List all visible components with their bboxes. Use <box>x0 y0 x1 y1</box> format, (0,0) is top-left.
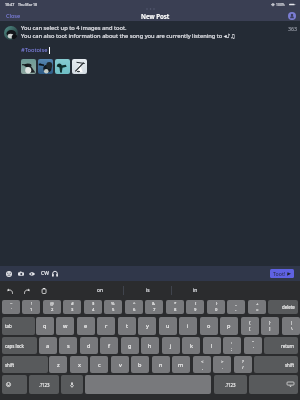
staticText: # <box>71 301 74 307</box>
button[interactable]: o <box>200 317 218 335</box>
button[interactable]: > <box>213 356 231 373</box>
staticText: , <box>202 365 204 371</box>
button[interactable]: t <box>118 317 136 335</box>
button[interactable]: $ <box>84 300 102 314</box>
button[interactable]: .?123 <box>214 375 247 394</box>
button[interactable]: k <box>182 337 200 354</box>
staticText: x <box>78 361 81 369</box>
staticText: / <box>242 365 244 371</box>
button[interactable]: e <box>77 317 95 335</box>
staticText: ( <box>195 301 197 307</box>
button[interactable]: b <box>131 356 149 373</box>
button[interactable]: < <box>193 356 211 373</box>
staticText: b <box>138 361 142 369</box>
button[interactable]: # <box>63 300 81 314</box>
button[interactable]: i <box>179 317 197 335</box>
button[interactable]: .?123 <box>29 375 59 394</box>
staticText: s <box>67 342 70 350</box>
button[interactable]: h <box>141 337 159 354</box>
button[interactable]: g <box>121 337 139 354</box>
button[interactable]: : <box>223 337 241 354</box>
button[interactable]: y <box>138 317 156 335</box>
button[interactable]: & <box>145 300 163 314</box>
button[interactable]: shift <box>2 356 48 373</box>
button[interactable]: ( <box>186 300 204 314</box>
staticText: l <box>211 342 213 350</box>
staticText: * <box>174 301 177 307</box>
button[interactable]: Undo <box>5 286 15 296</box>
button[interactable]: ? <box>234 356 252 373</box>
button[interactable]: s <box>59 337 77 354</box>
button[interactable]: d <box>80 337 98 354</box>
staticText: w <box>63 322 68 330</box>
button[interactable]: n <box>152 356 170 373</box>
button[interactable]: Close <box>4 10 23 21</box>
button[interactable]: } <box>261 317 279 335</box>
staticText: [ <box>249 326 251 332</box>
button[interactable]: tab <box>2 317 35 335</box>
button[interactable]: ! <box>22 300 40 314</box>
button[interactable]: p <box>220 317 238 335</box>
button[interactable]: delete <box>268 300 298 314</box>
button[interactable]: return <box>264 337 298 354</box>
button[interactable]: j <box>162 337 180 354</box>
button[interactable]: Dictate <box>61 375 83 394</box>
button[interactable]: Account <box>288 12 296 20</box>
button[interactable]: r <box>97 317 115 335</box>
staticText: < <box>201 359 204 365</box>
button[interactable]: Toot! <box>270 269 294 278</box>
button[interactable]: Content warning <box>40 266 49 281</box>
button[interactable]: ) <box>207 300 225 314</box>
button[interactable]: " <box>244 337 262 354</box>
button[interactable]: * <box>166 300 184 314</box>
staticText: @ <box>50 301 54 307</box>
button[interactable]: Attached image <box>38 59 53 74</box>
button[interactable]: Visibility <box>27 266 37 281</box>
button[interactable]: Redo <box>22 286 32 296</box>
staticText: } <box>269 320 271 326</box>
staticText: j <box>170 342 172 350</box>
staticText: 1 <box>30 307 33 313</box>
button[interactable]: + <box>248 300 266 314</box>
button[interactable]: is <box>124 281 171 300</box>
button[interactable]: l <box>203 337 221 354</box>
button[interactable]: shift <box>254 356 298 373</box>
button[interactable]: { <box>241 317 259 335</box>
button[interactable]: v <box>111 356 129 373</box>
staticText: o <box>207 322 211 330</box>
button[interactable]: m <box>172 356 190 373</box>
button[interactable]: caps lock <box>2 337 37 354</box>
staticText: & <box>152 301 156 307</box>
button[interactable]: f <box>100 337 118 354</box>
staticText: shift <box>285 362 295 368</box>
button[interactable]: Add media <box>16 266 26 281</box>
button[interactable]: | <box>282 317 300 335</box>
button[interactable]: x <box>70 356 88 373</box>
button[interactable]: Attached image <box>21 59 36 74</box>
staticText: a <box>46 342 50 350</box>
button[interactable]: Hide keyboard <box>249 375 298 394</box>
button[interactable]: Attached image <box>55 59 70 74</box>
button[interactable]: w <box>56 317 74 335</box>
button[interactable]: Emoji keyboard <box>2 375 27 394</box>
button[interactable]: % <box>104 300 122 314</box>
staticText: 5 <box>112 307 115 313</box>
button[interactable]: ^ <box>125 300 143 314</box>
button[interactable]: Emoji <box>4 266 14 281</box>
button[interactable]: c <box>90 356 108 373</box>
staticText: 2 <box>51 307 54 313</box>
button[interactable]: z <box>49 356 67 373</box>
button[interactable]: u <box>159 317 177 335</box>
button[interactable]: on <box>76 281 123 300</box>
button[interactable]: Attached image <box>72 59 87 74</box>
button[interactable]: q <box>36 317 54 335</box>
button[interactable]: @ <box>43 300 61 314</box>
button[interactable]: a <box>39 337 57 354</box>
button[interactable]: ~ <box>2 300 20 314</box>
staticText: = <box>256 307 259 313</box>
button[interactable]: Now playing <box>50 266 60 281</box>
button[interactable]: in <box>172 281 219 300</box>
button[interactable]: _ <box>227 300 245 314</box>
button[interactable]: Paste <box>39 286 49 296</box>
